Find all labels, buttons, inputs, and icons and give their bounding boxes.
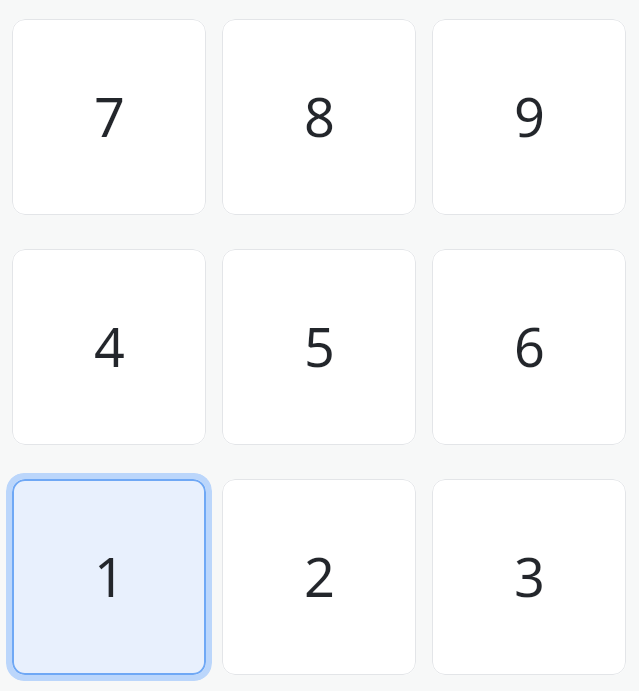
button[interactable]: Key 4 [6,243,212,451]
staticText: 2 [304,539,335,613]
button[interactable]: Key 7 [6,13,212,221]
button[interactable]: Key 1 [6,473,212,681]
staticText: 4 [94,309,125,383]
button[interactable]: Key 6 [426,243,632,451]
staticText: 1 [94,539,125,613]
button[interactable]: Key 5 [216,243,422,451]
button[interactable]: Key 3 [426,473,632,681]
button[interactable]: Key 2 [216,473,422,681]
button[interactable]: Key 9 [426,13,632,221]
staticText: 3 [514,539,545,613]
staticText: 9 [514,79,545,153]
staticText: 8 [304,79,335,153]
staticText: 6 [514,309,545,383]
staticText: 7 [94,79,125,153]
button[interactable]: Key 8 [216,13,422,221]
staticText: 5 [304,309,335,383]
